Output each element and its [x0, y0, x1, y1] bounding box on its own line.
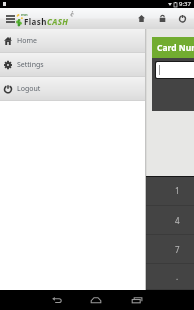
- button[interactable]: Open navigation menu: [2, 8, 18, 29]
- staticText: Settings: [17, 60, 44, 70]
- staticText: Home: [17, 36, 37, 46]
- staticText: Flash: [24, 16, 47, 27]
- button[interactable]: Back: [45, 290, 69, 310]
- button[interactable]: 7: [146, 235, 194, 263]
- staticText: 4: [175, 215, 180, 226]
- staticText: mn: [21, 12, 28, 17]
- button[interactable]: Recents: [125, 290, 149, 310]
- button[interactable]: Home: [0, 29, 145, 53]
- button[interactable]: Power: [172, 8, 192, 29]
- button[interactable]: Home: [84, 290, 108, 310]
- button[interactable]: Lock: [152, 8, 172, 29]
- staticText: CASH: [47, 16, 69, 27]
- button[interactable]: 1: [146, 176, 194, 205]
- button[interactable]: Home: [131, 8, 151, 29]
- staticText: 1: [175, 185, 180, 196]
- staticText: Logout: [17, 84, 41, 94]
- staticText: .: [176, 271, 179, 282]
- staticText: Card Number: [157, 42, 194, 54]
- button[interactable]: Settings: [0, 53, 145, 77]
- staticText: 7: [175, 244, 180, 255]
- staticText: 9:37: [179, 0, 191, 8]
- button[interactable]: 4: [146, 206, 194, 234]
- button[interactable]: Logout: [0, 77, 145, 101]
